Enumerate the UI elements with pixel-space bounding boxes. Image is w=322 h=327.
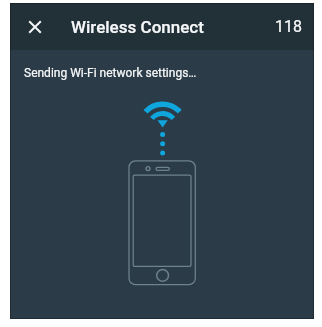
staticText: Wireless Connect (71, 17, 204, 37)
staticText: 118 (275, 17, 302, 36)
staticText: Sending Wi-Fi network settings… (24, 66, 197, 80)
button[interactable]: Close (10, 3, 57, 50)
